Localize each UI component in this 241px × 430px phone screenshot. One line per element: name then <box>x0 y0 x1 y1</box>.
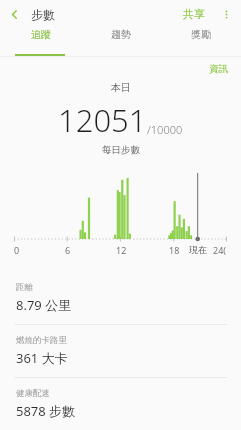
staticText: 距離 <box>16 282 33 293</box>
staticText: 本日 <box>111 81 131 94</box>
staticText: 每日步數 <box>102 144 140 156</box>
button[interactable]: 共享 <box>175 2 213 26</box>
button[interactable]: 追蹤 <box>0 28 81 41</box>
staticText: 361 大卡 <box>16 349 68 367</box>
staticText: 24(時) <box>213 244 227 258</box>
staticText: 現在 <box>189 244 207 255</box>
button[interactable]: 資訊 <box>196 59 241 79</box>
staticText: 步數 <box>31 7 55 22</box>
button[interactable]: 獎勵 <box>161 28 241 41</box>
staticText: 共享 <box>183 7 205 21</box>
button[interactable]: 燃燒的卡路里 <box>0 325 241 377</box>
staticText: 0 <box>14 244 20 256</box>
button[interactable]: 距離 <box>0 272 241 324</box>
staticText: 獎勵 <box>191 28 211 41</box>
staticText: 趨勢 <box>111 28 131 41</box>
staticText: 燃燒的卡路里 <box>16 335 67 346</box>
staticText: 資訊 <box>209 63 228 75</box>
staticText: /10000 <box>147 122 183 137</box>
staticText: 8.79 公里 <box>16 296 72 314</box>
staticText: 健康配速 <box>16 388 50 399</box>
staticText: 追蹤 <box>31 28 51 41</box>
staticText: 5878 步數 <box>16 402 76 420</box>
button[interactable]: 健康配速 <box>0 378 241 430</box>
staticText: 12051 <box>58 99 147 141</box>
button[interactable]: More options <box>213 1 239 27</box>
staticText: 18 <box>169 244 180 256</box>
button[interactable]: 趨勢 <box>81 28 161 41</box>
staticText: 6 <box>65 244 71 256</box>
button[interactable]: Back <box>0 0 28 28</box>
staticText: 12 <box>116 244 127 256</box>
